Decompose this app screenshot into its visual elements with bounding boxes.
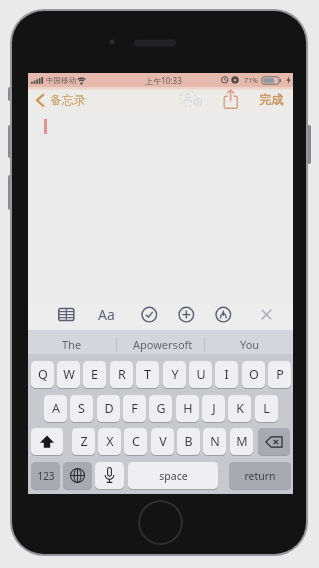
staticText: U: [196, 366, 206, 383]
button[interactable]: F: [123, 395, 146, 422]
button[interactable]: [257, 304, 276, 325]
button[interactable]: W: [57, 361, 80, 388]
staticText: C: [132, 433, 140, 450]
button[interactable]: P: [268, 361, 291, 388]
staticText: H: [183, 400, 193, 417]
button[interactable]: [177, 89, 205, 110]
button[interactable]: Z: [72, 428, 95, 455]
staticText: Y: [171, 366, 179, 383]
staticText: J: [212, 400, 216, 417]
staticText: W: [63, 366, 75, 383]
staticText: You: [240, 337, 260, 352]
staticText: return: [244, 469, 276, 483]
button[interactable]: C: [124, 428, 147, 455]
button[interactable]: return: [229, 462, 291, 489]
staticText: V: [159, 433, 167, 450]
staticText: M: [236, 433, 248, 450]
staticText: S: [78, 400, 85, 417]
button[interactable]: Aa: [96, 304, 117, 325]
button[interactable]: H: [176, 395, 199, 422]
staticText: Aa: [98, 305, 115, 324]
button[interactable]: R: [110, 361, 133, 388]
button[interactable]: [139, 304, 160, 325]
staticText: X: [106, 433, 114, 450]
button[interactable]: M: [230, 428, 253, 455]
button[interactable]: O: [242, 361, 265, 388]
button[interactable]: 123: [31, 462, 60, 489]
button[interactable]: B: [177, 428, 200, 455]
staticText: 上午10:33: [145, 75, 182, 86]
staticText: R: [118, 366, 126, 383]
button[interactable]: [258, 428, 290, 455]
staticText: Q: [38, 366, 48, 383]
staticText: The: [62, 337, 82, 352]
button[interactable]: V: [151, 428, 174, 455]
staticText: T: [144, 366, 151, 383]
staticText: A: [52, 400, 60, 417]
button[interactable]: L: [255, 395, 278, 422]
staticText: Apowersoft: [133, 337, 193, 352]
staticText: F: [131, 400, 138, 417]
button[interactable]: X: [98, 428, 121, 455]
button[interactable]: K: [228, 395, 251, 422]
staticText: Z: [80, 433, 88, 450]
button[interactable]: Y: [163, 361, 186, 388]
staticText: B: [184, 433, 193, 450]
button[interactable]: G: [149, 395, 172, 422]
button[interactable]: 完成: [251, 89, 290, 110]
staticText: G: [156, 400, 166, 417]
button[interactable]: N: [203, 428, 226, 455]
button[interactable]: [176, 304, 197, 325]
staticText: 备忘录: [50, 92, 86, 107]
button[interactable]: [213, 304, 234, 325]
staticText: L: [263, 400, 270, 417]
button[interactable]: I: [215, 361, 238, 388]
button[interactable]: T: [136, 361, 159, 388]
button[interactable]: D: [97, 395, 120, 422]
staticText: space: [159, 469, 188, 483]
button[interactable]: Apowersoft: [117, 333, 209, 355]
staticText: K: [236, 400, 244, 417]
staticText: P: [276, 366, 284, 383]
button[interactable]: E: [83, 361, 106, 388]
button[interactable]: [222, 88, 242, 111]
button[interactable]: The: [28, 333, 116, 355]
staticText: 中国移动: [46, 76, 76, 85]
button[interactable]: [63, 462, 92, 489]
button[interactable]: space: [128, 462, 218, 489]
button[interactable]: 备忘录: [30, 89, 110, 110]
staticText: 完成: [259, 92, 283, 107]
button[interactable]: Q: [31, 361, 54, 388]
staticText: I: [224, 366, 229, 383]
button[interactable]: [138, 500, 183, 545]
staticText: N: [210, 433, 220, 450]
button[interactable]: [56, 305, 77, 325]
staticText: D: [104, 400, 114, 417]
button[interactable]: A: [44, 395, 67, 422]
button[interactable]: [95, 462, 124, 489]
staticText: E: [91, 366, 98, 383]
staticText: O: [249, 366, 259, 383]
button[interactable]: You: [209, 333, 291, 355]
button[interactable]: [31, 428, 63, 455]
button[interactable]: J: [202, 395, 225, 422]
staticText: 71%: [244, 76, 258, 86]
staticText: 123: [37, 469, 55, 483]
button[interactable]: S: [70, 395, 93, 422]
button[interactable]: U: [189, 361, 212, 388]
